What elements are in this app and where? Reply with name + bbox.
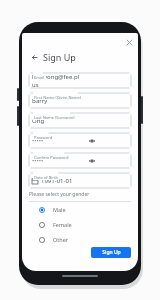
button[interactable]: Close	[124, 37, 135, 48]
staticText: Confirm Password	[34, 155, 69, 160]
staticText: Ong	[32, 117, 45, 125]
staticText: Male	[53, 206, 66, 213]
staticText: 1991-01-01	[41, 177, 73, 185]
button[interactable]: barryong@fee.plus	[29, 73, 131, 88]
staticText: Please select your gender	[29, 191, 90, 198]
staticText: •••••	[32, 157, 44, 165]
button[interactable]: Show password	[88, 137, 96, 145]
button[interactable]: Ong	[29, 113, 131, 128]
staticText: Date of Birth	[34, 175, 58, 180]
button[interactable]: Back	[29, 52, 39, 62]
staticText: Email	[34, 75, 45, 80]
button[interactable]: Male	[29, 202, 131, 217]
button[interactable]: Other	[29, 232, 131, 247]
button[interactable]: •••••	[29, 133, 131, 148]
staticText: Sign Up	[43, 51, 76, 63]
button[interactable]: Show password	[88, 157, 96, 165]
staticText: barryong@fee.plus	[32, 73, 80, 88]
button[interactable]: 1991-01-01	[29, 173, 131, 188]
button[interactable]: Female	[29, 217, 131, 232]
staticText: First Name (Given Name)	[34, 95, 81, 100]
staticText: Password	[34, 135, 53, 140]
staticText: Sign Up	[102, 249, 121, 256]
staticText: Female	[53, 221, 72, 228]
staticText: Last Name (Surname)	[34, 115, 75, 120]
button[interactable]: Sign Up	[91, 247, 131, 258]
button[interactable]: •••••	[29, 153, 131, 168]
staticText: Barry	[32, 97, 48, 105]
staticText: Other	[53, 236, 69, 243]
staticText: •••••	[32, 137, 44, 145]
button[interactable]: Barry	[29, 93, 131, 108]
